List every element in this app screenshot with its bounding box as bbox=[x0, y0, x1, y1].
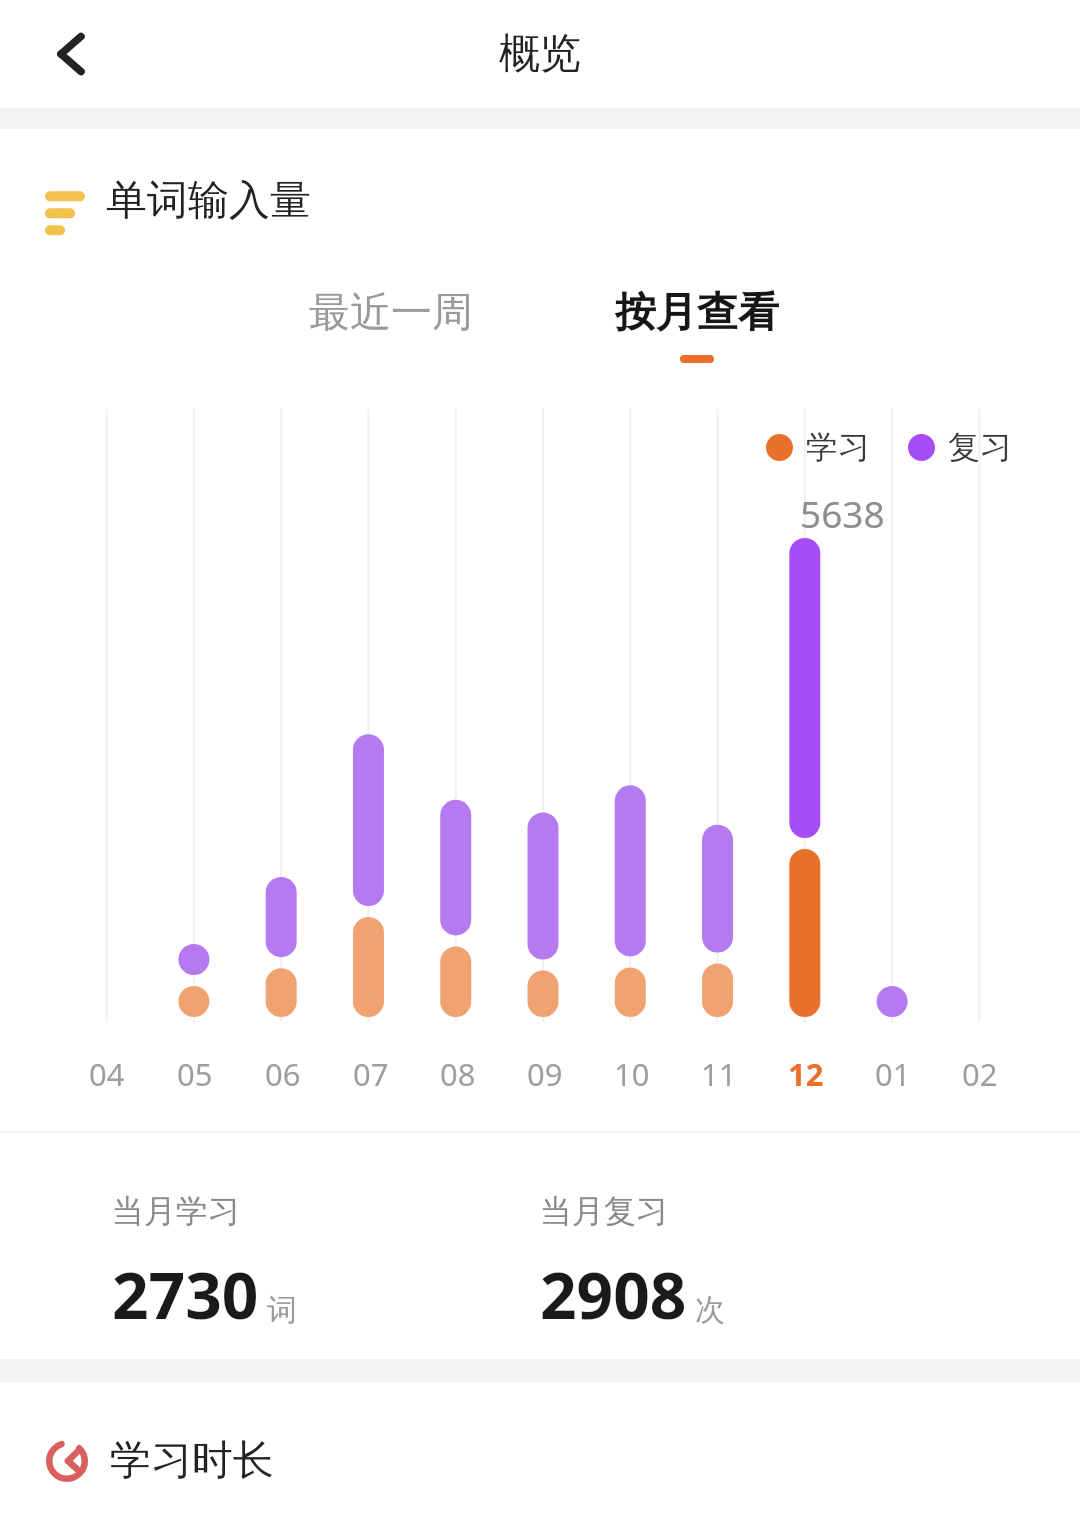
staticText: 02 bbox=[962, 1053, 998, 1095]
button[interactable]: 单词输入量 bbox=[0, 129, 1080, 273]
staticText: 学习 bbox=[806, 427, 870, 467]
staticText: 12 bbox=[788, 1053, 824, 1095]
staticText: 复习 bbox=[948, 427, 1012, 467]
staticText: 2908 bbox=[540, 1251, 687, 1338]
staticText: 10 bbox=[614, 1053, 650, 1095]
staticText: 04 bbox=[89, 1053, 125, 1095]
staticText: 05 bbox=[177, 1053, 213, 1095]
button[interactable]: Back bbox=[38, 21, 104, 87]
staticText: 2730 bbox=[112, 1251, 259, 1338]
button[interactable]: 学习 bbox=[766, 427, 870, 467]
button[interactable]: 最近一周 bbox=[238, 273, 544, 397]
staticText: 单词输入量 bbox=[106, 175, 311, 227]
staticText: 09 bbox=[527, 1053, 563, 1095]
staticText: 学习时长 bbox=[110, 1435, 274, 1487]
staticText: 5638 bbox=[800, 488, 885, 538]
staticText: 11 bbox=[701, 1053, 737, 1095]
button[interactable]: 学习时长 bbox=[0, 1382, 1080, 1539]
staticText: 06 bbox=[265, 1053, 301, 1095]
button[interactable]: 复习 bbox=[908, 427, 1012, 467]
button[interactable]: 按月查看 bbox=[544, 273, 850, 397]
button[interactable]: 当月复习 bbox=[540, 1133, 858, 1359]
staticText: 01 bbox=[875, 1053, 911, 1095]
staticText: 当月复习 bbox=[540, 1191, 668, 1231]
staticText: 08 bbox=[440, 1053, 476, 1095]
button[interactable]: 当月学习 bbox=[112, 1133, 430, 1359]
staticText: 次 bbox=[695, 1291, 725, 1329]
staticText: 当月学习 bbox=[112, 1191, 240, 1231]
staticText: 词 bbox=[267, 1291, 297, 1329]
staticText: 07 bbox=[353, 1053, 389, 1095]
staticText: 概览 bbox=[499, 28, 581, 80]
staticText: 最近一周 bbox=[309, 287, 473, 339]
staticText: 按月查看 bbox=[615, 287, 779, 339]
